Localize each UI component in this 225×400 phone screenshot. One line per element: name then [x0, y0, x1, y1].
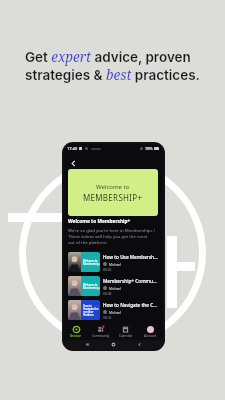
- staticText: Welcome to: [96, 183, 130, 191]
- staticText: 08:33: [103, 315, 112, 319]
- button[interactable]: Welcome to Membership+: [68, 276, 159, 296]
- button[interactable]: Community: [88, 323, 113, 340]
- staticText: Browse: [70, 334, 82, 338]
- staticText: Calendar: [119, 334, 133, 338]
- staticText: MEMBERSHIP+: [83, 192, 143, 203]
- button[interactable]: Back: [64, 153, 163, 169]
- staticText: 17:40: [67, 146, 78, 151]
- staticText: Welcome to Membership+: [83, 259, 100, 265]
- staticText: We're so glad you're here in Membership+…: [68, 227, 156, 245]
- staticText: How to Navigate the member Platform: [83, 304, 99, 316]
- staticText: Membership+ Commu...: [103, 278, 157, 284]
- button[interactable]: Back: [137, 342, 142, 347]
- button[interactable]: Home: [111, 342, 116, 347]
- staticText: Welcome to Membership+: [68, 218, 131, 225]
- staticText: Welcome to Membership+: [83, 283, 100, 289]
- staticText: 08:26: [103, 267, 112, 271]
- button[interactable]: Calendar: [113, 323, 138, 340]
- staticText: Michael: [109, 286, 122, 290]
- staticText: Get expert advice, proven strategies & b…: [25, 48, 200, 84]
- button[interactable]: Recents: [85, 342, 90, 347]
- staticText: How to Navigate the C...: [103, 302, 157, 308]
- staticText: Account: [144, 334, 157, 338]
- button[interactable]: Browse: [64, 323, 88, 340]
- staticText: How to Use Membersh...: [103, 254, 158, 260]
- staticText: Community: [92, 334, 110, 338]
- button[interactable]: How to Navigate the member Platform: [68, 300, 159, 320]
- staticText: 78%: [145, 146, 153, 151]
- staticText: 08:48: [103, 291, 112, 295]
- staticText: Michael: [109, 310, 122, 314]
- button[interactable]: Welcome to Membership+: [68, 252, 159, 272]
- button[interactable]: Account: [138, 323, 163, 340]
- staticText: Michael: [109, 262, 122, 266]
